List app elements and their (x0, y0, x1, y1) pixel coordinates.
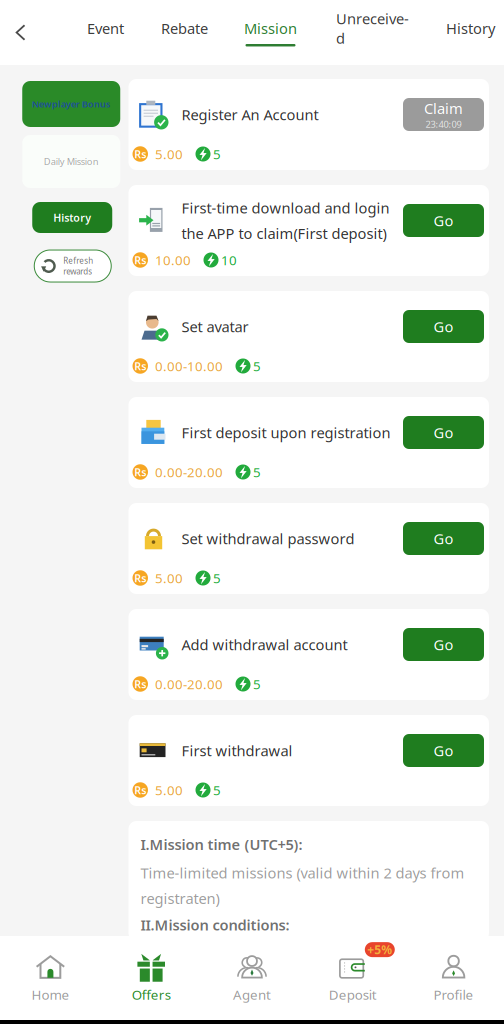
staticText: 5 (213, 145, 221, 163)
button[interactable]: Rebate (161, 15, 208, 49)
staticText: 5.00 (155, 781, 183, 799)
staticText: 0.00-20.00 (155, 463, 223, 481)
staticText: Rs (134, 571, 146, 585)
button[interactable]: Mission (244, 15, 297, 49)
staticText: Claim (424, 99, 463, 118)
staticText: Go (433, 211, 453, 230)
staticText: 10 (221, 251, 237, 269)
staticText: registraten) (140, 888, 219, 908)
button[interactable]: Go (403, 734, 484, 767)
staticText: First-time download and login (181, 198, 389, 217)
staticText: Daily Mission (44, 155, 99, 168)
staticText: 23:40:09 (425, 118, 461, 130)
button[interactable]: Go (403, 522, 484, 555)
staticText: Set avatar (181, 317, 248, 336)
staticText: History (446, 18, 495, 38)
button[interactable]: Refresh (34, 250, 111, 282)
staticText: the APP to claim(First deposit) (181, 223, 386, 243)
staticText: Rs (134, 359, 146, 373)
staticText: Go (433, 423, 453, 442)
staticText: 5 (213, 569, 221, 587)
button[interactable]: Unreceived (336, 15, 409, 49)
staticText: Profile (434, 986, 474, 1003)
staticText: 5 (213, 781, 221, 799)
button[interactable]: Back (10, 15, 32, 49)
button[interactable]: History (32, 202, 112, 233)
staticText: 5 (253, 357, 261, 375)
staticText: Go (433, 741, 453, 760)
button[interactable]: +5% (302, 948, 403, 1008)
staticText: Agent (233, 986, 271, 1003)
button[interactable]: Profile (403, 948, 504, 1008)
staticText: Rs (134, 677, 146, 691)
staticText: 10.00 (155, 251, 191, 269)
staticText: Offers (132, 986, 171, 1003)
button[interactable]: Go (403, 416, 484, 449)
button[interactable]: Home (0, 948, 101, 1008)
staticText: I.Mission time (UTC+5): (140, 834, 302, 854)
staticText: Go (433, 317, 453, 336)
button[interactable]: Offers (101, 948, 202, 1008)
staticText: 5 (253, 675, 261, 693)
staticText: 5.00 (155, 145, 183, 163)
staticText: Rebate (161, 18, 208, 38)
staticText: Add withdrawal account (181, 635, 347, 654)
staticText: +5% (367, 942, 392, 958)
button[interactable]: Daily Mission (22, 135, 120, 188)
button[interactable]: History (446, 15, 495, 49)
staticText: Set withdrawal password (181, 529, 354, 548)
button[interactable]: Newplayer Bonus (22, 81, 120, 127)
staticText: Go (433, 529, 453, 548)
staticText: First deposit upon registration (181, 423, 390, 442)
button[interactable]: Go (403, 310, 484, 343)
staticText: Go (433, 635, 453, 654)
staticText: Rs (134, 465, 146, 479)
staticText: Time-limited missions (valid within 2 da… (140, 863, 464, 882)
button[interactable]: Go (403, 204, 484, 237)
staticText: 5.00 (155, 569, 183, 587)
staticText: 5 (253, 463, 261, 481)
staticText: Unreceived (336, 9, 409, 48)
staticText: Register An Account (181, 105, 318, 124)
staticText: Deposit (329, 986, 377, 1003)
staticText: Newplayer Bonus (32, 98, 111, 110)
staticText: II.Mission conditions: (140, 915, 289, 934)
staticText: History (53, 210, 91, 225)
staticText: Home (31, 986, 69, 1003)
staticText: Rs (134, 147, 146, 161)
button[interactable]: Event (87, 15, 124, 49)
staticText: Mission (244, 18, 297, 38)
staticText: Refresh (63, 255, 93, 266)
staticText: Event (87, 18, 124, 38)
button[interactable]: Agent (202, 948, 302, 1008)
staticText: 0.00-20.00 (155, 675, 223, 693)
staticText: Rs (134, 253, 146, 267)
button[interactable]: Claim (403, 98, 484, 131)
staticText: rewards (63, 266, 92, 277)
staticText: 0.00-10.00 (155, 357, 223, 375)
staticText: Rs (134, 783, 146, 797)
button[interactable]: Go (403, 628, 484, 661)
staticText: First withdrawal (181, 741, 292, 760)
